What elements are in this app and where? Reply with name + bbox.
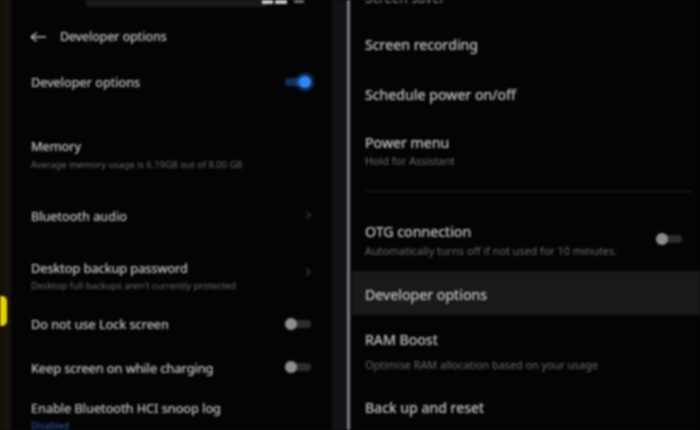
button[interactable]: Enable Bluetooth HCI snoop log — [11, 390, 332, 430]
button[interactable]: Developer options — [352, 271, 700, 315]
button[interactable]: RAM Boost — [352, 318, 700, 378]
staticText: OTG connection — [365, 222, 472, 241]
button[interactable]: Desktop backup password — [11, 248, 332, 304]
staticText: Automatically turns off if not used for … — [365, 243, 617, 258]
staticText: Screen saver — [365, 0, 446, 7]
staticText: Desktop backup password — [31, 259, 188, 276]
staticText: Developer options — [365, 285, 488, 304]
button[interactable]: Memory — [11, 124, 332, 180]
button[interactable]: Do not use Lock screen — [11, 303, 332, 343]
staticText: Developer options — [31, 73, 141, 90]
staticText: Do not use Lock screen — [31, 315, 169, 332]
staticText: Disabled — [31, 419, 69, 430]
button[interactable]: Switch off — [656, 233, 682, 245]
button[interactable]: Back — [30, 30, 46, 44]
staticText: Optimise RAM allocation based on your us… — [365, 357, 599, 372]
staticText: Screen recording — [365, 35, 479, 54]
button[interactable]: Bluetooth audio — [11, 194, 332, 238]
button[interactable]: Keep screen on while charging — [11, 347, 332, 387]
button[interactable]: Screen recording — [352, 22, 700, 66]
staticText: Hold for Assistant — [365, 153, 456, 168]
button[interactable]: Switch off — [285, 361, 311, 373]
staticText: Schedule power on/off — [365, 85, 516, 104]
staticText: RAM Boost — [365, 330, 438, 349]
button[interactable]: OTG connection — [352, 208, 700, 264]
button[interactable]: Back up and reset — [352, 385, 700, 429]
staticText: Developer options — [60, 28, 167, 45]
staticText: Memory — [31, 137, 81, 154]
staticText: Bluetooth audio — [31, 207, 127, 224]
staticText: Power menu — [365, 133, 450, 152]
staticText: Enable Bluetooth HCI snoop log — [31, 399, 221, 416]
button[interactable]: Switch off — [285, 318, 311, 330]
button[interactable]: Open — [302, 265, 314, 279]
staticText: Back up and reset — [365, 398, 485, 417]
button[interactable]: Power menu — [352, 122, 700, 174]
button[interactable]: Developer options — [11, 22, 332, 50]
staticText: Average memory usage is 6.19GB out of 8.… — [31, 158, 243, 171]
button[interactable]: Switch on — [285, 76, 311, 88]
staticText: Keep screen on while charging — [31, 359, 214, 376]
button[interactable]: Developer options — [11, 58, 332, 104]
staticText: Desktop full backups aren't currently pr… — [31, 279, 237, 292]
button[interactable]: Open — [302, 208, 314, 222]
button[interactable]: Schedule power on/off — [352, 72, 700, 116]
